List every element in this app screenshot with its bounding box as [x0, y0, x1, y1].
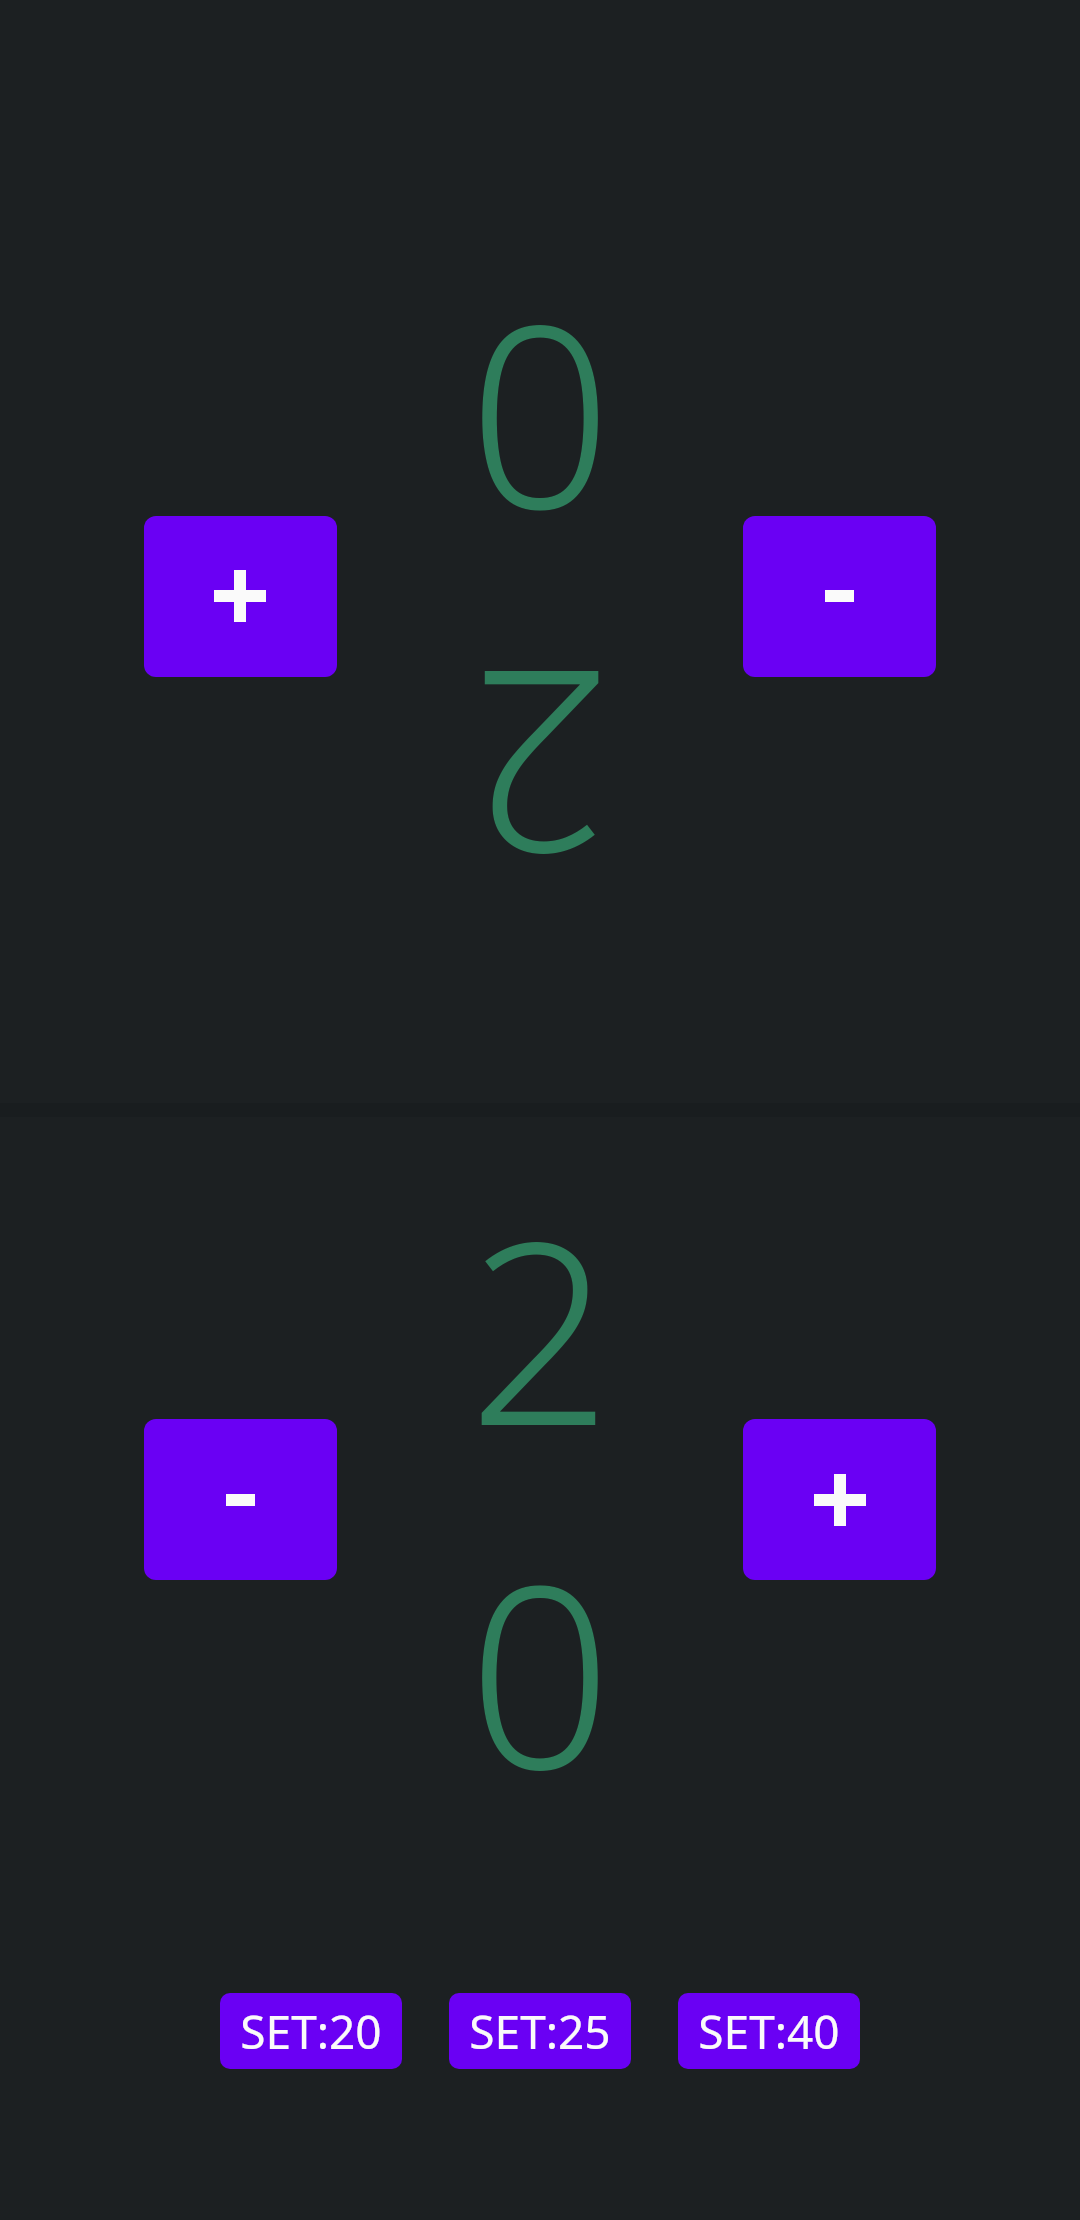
- staticText: 20: [409, 1156, 671, 1842]
- button[interactable]: Increase: [144, 516, 337, 677]
- button[interactable]: Decrease: [144, 1419, 337, 1580]
- button[interactable]: Decrease: [743, 516, 936, 677]
- button[interactable]: SET:25: [449, 1993, 631, 2069]
- staticText: 20: [409, 254, 671, 940]
- staticText: SET:25: [469, 2000, 611, 2063]
- button[interactable]: SET:40: [678, 1993, 860, 2069]
- staticText: SET:40: [698, 2000, 840, 2063]
- button[interactable]: SET:20: [220, 1993, 402, 2069]
- button[interactable]: Increase: [743, 1419, 936, 1580]
- staticText: SET:20: [240, 2000, 382, 2063]
